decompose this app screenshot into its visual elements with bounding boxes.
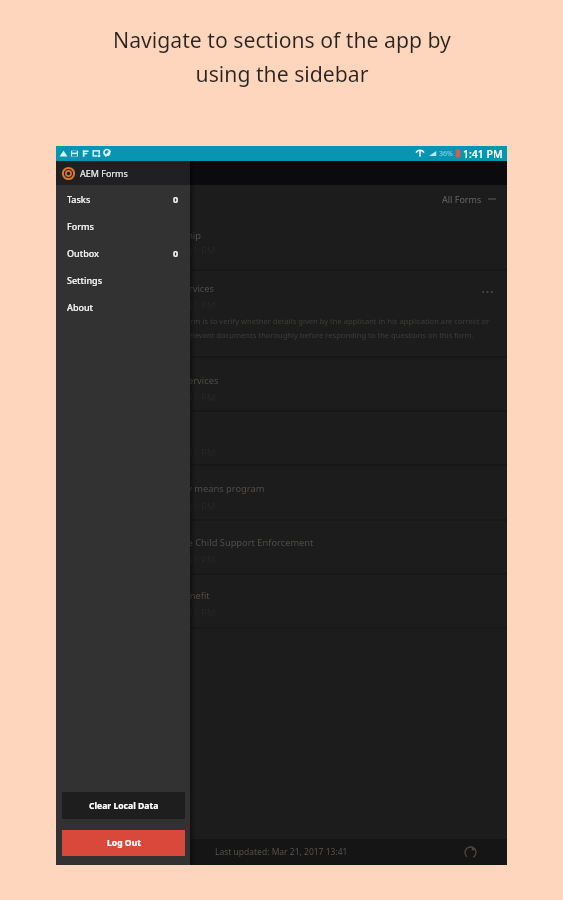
button[interactable]: AEM Forms: [56, 161, 190, 185]
button[interactable]: Log Out: [62, 830, 185, 856]
staticText: Forms: [67, 220, 94, 232]
staticText: Tasks: [67, 193, 91, 205]
staticText: Application for the Child Support Enforc…: [112, 536, 314, 549]
staticText: Mar 21, 2017 01:41 PM: [112, 500, 219, 513]
button[interactable]: [56, 357, 507, 411]
button[interactable]: [56, 520, 507, 574]
button[interactable]: Tasks: [56, 185, 190, 212]
button[interactable]: Outbox: [56, 239, 190, 266]
staticText: Application for Benefit: [112, 589, 210, 602]
staticText: Outbox: [67, 247, 99, 259]
staticText: All Forms: [442, 193, 482, 205]
button[interactable]: [56, 411, 507, 465]
staticText: 0: [173, 193, 179, 205]
button[interactable]: Clear Local Data: [62, 792, 185, 819]
staticText: 36%: [439, 149, 453, 159]
staticText: Settings: [67, 274, 103, 286]
staticText: Applications for Services: [112, 374, 219, 387]
staticText: Mar 21, 2017 01:41 PM: [112, 446, 219, 459]
button[interactable]: About: [56, 293, 190, 320]
staticText: 1:41 PM: [463, 147, 503, 161]
staticText: The purpose of this form is to verify wh…: [112, 316, 494, 340]
staticText: About: [67, 301, 94, 313]
button[interactable]: Settings: [56, 266, 190, 293]
staticText: Mar 21, 2017 01:41 PM: [112, 244, 219, 257]
staticText: Application for Services: [112, 282, 214, 295]
staticText: Request of Hardship: [112, 229, 201, 242]
button[interactable]: All Forms: [56, 191, 507, 207]
button[interactable]: [56, 465, 507, 519]
staticText: Mar 21, 2017 01:41 PM: [112, 391, 219, 404]
staticText: Last updated: Mar 21, 2017 13:41: [215, 846, 348, 858]
staticText: Mar 21, 2017 01:41 PM: [112, 606, 219, 619]
staticText: Navigate to sections of the app by using…: [113, 25, 451, 88]
staticText: Application for my means program: [112, 482, 265, 495]
staticText: 0: [173, 247, 179, 259]
button[interactable]: Forms: [56, 212, 190, 239]
button[interactable]: [56, 574, 507, 628]
button[interactable]: More options: [477, 282, 497, 302]
staticText: Mar 21, 2017 01:41 PM: [112, 553, 219, 566]
staticText: Log Out: [107, 837, 141, 849]
button[interactable]: [56, 211, 507, 270]
button[interactable]: Refresh: [462, 844, 478, 860]
staticText: Mar 21, 2017 01:41 PM: [112, 299, 219, 312]
staticText: AEM Forms: [80, 167, 128, 179]
staticText: Clear Local Data: [89, 800, 159, 812]
button[interactable]: [56, 270, 507, 357]
